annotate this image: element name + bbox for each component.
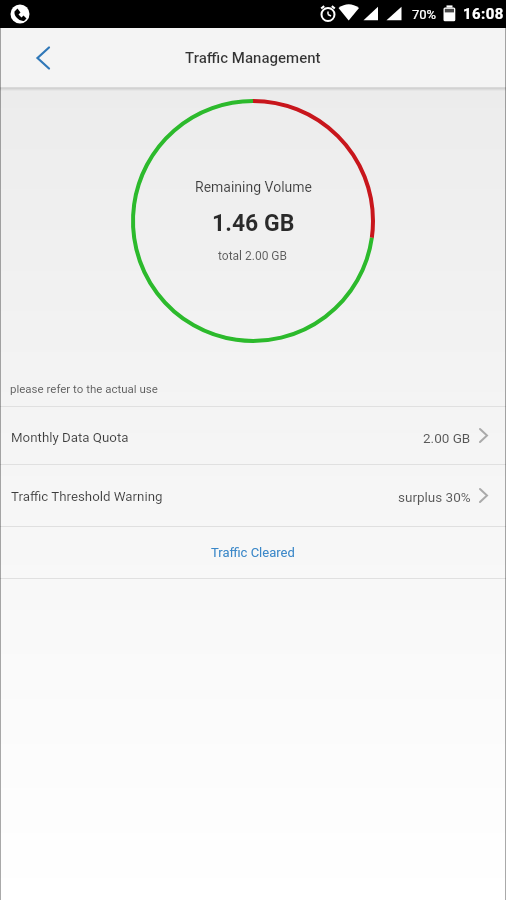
staticText: 70% xyxy=(412,7,437,22)
staticText: 1.46 GB xyxy=(212,210,295,237)
staticText: Traffic Management xyxy=(185,49,321,67)
staticText: Traffic Threshold Warning xyxy=(11,489,163,505)
button[interactable]: Monthly Data Quota xyxy=(0,407,506,464)
button[interactable]: Traffic Cleared xyxy=(0,527,506,578)
staticText: surplus 30% xyxy=(398,489,471,505)
button[interactable]: Traffic Threshold Warning xyxy=(0,465,506,526)
staticText: 16:08 xyxy=(463,5,504,23)
staticText: please refer to the actual use xyxy=(10,382,158,395)
button[interactable] xyxy=(0,28,64,88)
staticText: Remaining Volume xyxy=(195,179,312,195)
staticText: Monthly Data Quota xyxy=(11,430,129,446)
staticText: 2.00 GB xyxy=(423,430,471,446)
staticText: Traffic Cleared xyxy=(211,545,295,560)
staticText: total 2.00 GB xyxy=(218,249,288,263)
